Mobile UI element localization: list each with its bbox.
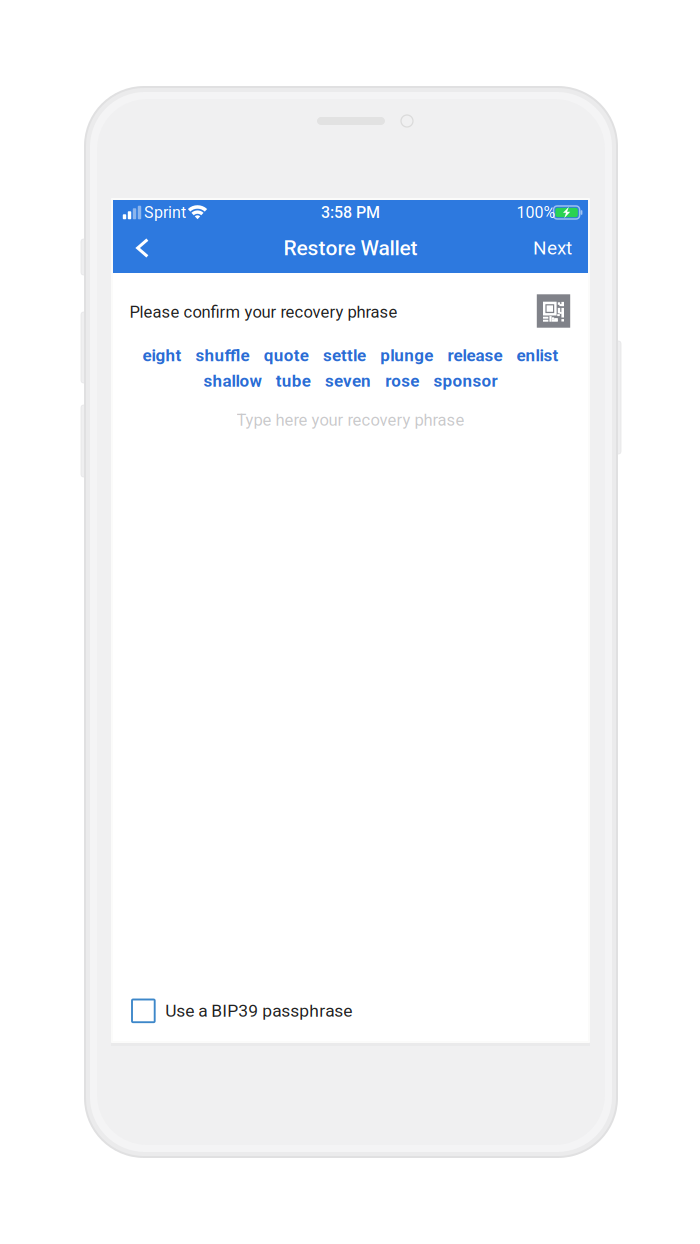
staticText: quote	[264, 345, 309, 365]
staticText: Type here your recovery phrase	[236, 410, 464, 430]
staticText: eight	[142, 345, 181, 365]
staticText: 3:58 PM	[321, 203, 380, 222]
button[interactable]: Use a BIP39 passphrase	[113, 986, 588, 1035]
staticText: Next	[533, 237, 572, 259]
button[interactable]: Next	[522, 226, 582, 270]
staticText: shuffle	[196, 345, 250, 365]
staticText: Use a BIP39 passphrase	[165, 1001, 352, 1021]
staticText: settle	[323, 345, 366, 365]
button[interactable]: Back	[120, 226, 164, 270]
staticText: seven	[325, 371, 371, 391]
staticText: Sprint	[144, 203, 186, 222]
staticText: sponsor	[433, 371, 497, 391]
staticText: enlist	[517, 345, 559, 365]
staticText: Please confirm your recovery phrase	[129, 302, 397, 322]
staticText: 100%	[516, 203, 555, 222]
staticText: shallow	[204, 371, 262, 391]
staticText: plunge	[380, 345, 433, 365]
staticText: Restore Wallet	[283, 236, 417, 260]
staticText: tube	[276, 371, 311, 391]
button[interactable]: Scan QR code	[537, 294, 570, 328]
staticText: rose	[385, 371, 419, 391]
staticText: release	[447, 345, 502, 365]
